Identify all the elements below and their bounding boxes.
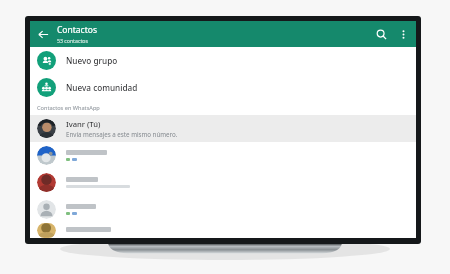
staticText: Nueva comunidad xyxy=(66,82,138,93)
button[interactable]: Atrás xyxy=(33,24,53,44)
button[interactable]: Nuevo grupo xyxy=(30,47,416,74)
staticText: 53 contactos xyxy=(57,37,88,44)
staticText: Ivanr (Tú) xyxy=(66,119,101,129)
staticText: Nuevo grupo xyxy=(66,55,118,66)
button[interactable] xyxy=(30,196,416,223)
staticText: Contactos xyxy=(57,24,97,36)
button[interactable]: Ivanr (Tú) xyxy=(30,115,416,142)
button[interactable] xyxy=(30,169,416,196)
button[interactable]: Nueva comunidad xyxy=(30,74,416,101)
button[interactable]: Más opciones xyxy=(392,23,414,45)
button[interactable] xyxy=(30,142,416,169)
button[interactable] xyxy=(30,223,416,238)
button[interactable]: Buscar xyxy=(370,23,392,45)
staticText: Envía mensajes a este mismo número. xyxy=(66,130,178,138)
staticText: Contactos en WhatsApp xyxy=(37,104,100,112)
